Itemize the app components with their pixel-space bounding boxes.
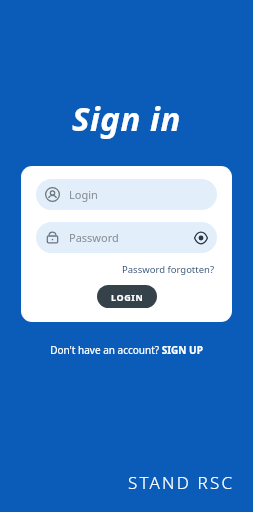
other: Password (45, 230, 60, 245)
other: Show password (194, 231, 208, 245)
button[interactable]: Password (36, 222, 217, 253)
staticText: STAND RSC (128, 471, 235, 494)
staticText: Password (69, 230, 194, 245)
staticText: LOGIN (111, 291, 144, 303)
button[interactable]: Account (36, 179, 217, 210)
staticText: Login (69, 187, 208, 202)
button[interactable]: Don't have an account? SIGN UP (46, 340, 207, 360)
staticText: Password forgotten? (122, 263, 215, 276)
button[interactable]: LOGIN (97, 285, 157, 308)
staticText: Don't have an account? SIGN UP (50, 343, 203, 357)
other: Account (45, 187, 60, 202)
staticText: Sign in (72, 96, 181, 141)
button[interactable]: Password forgotten? (120, 261, 217, 278)
